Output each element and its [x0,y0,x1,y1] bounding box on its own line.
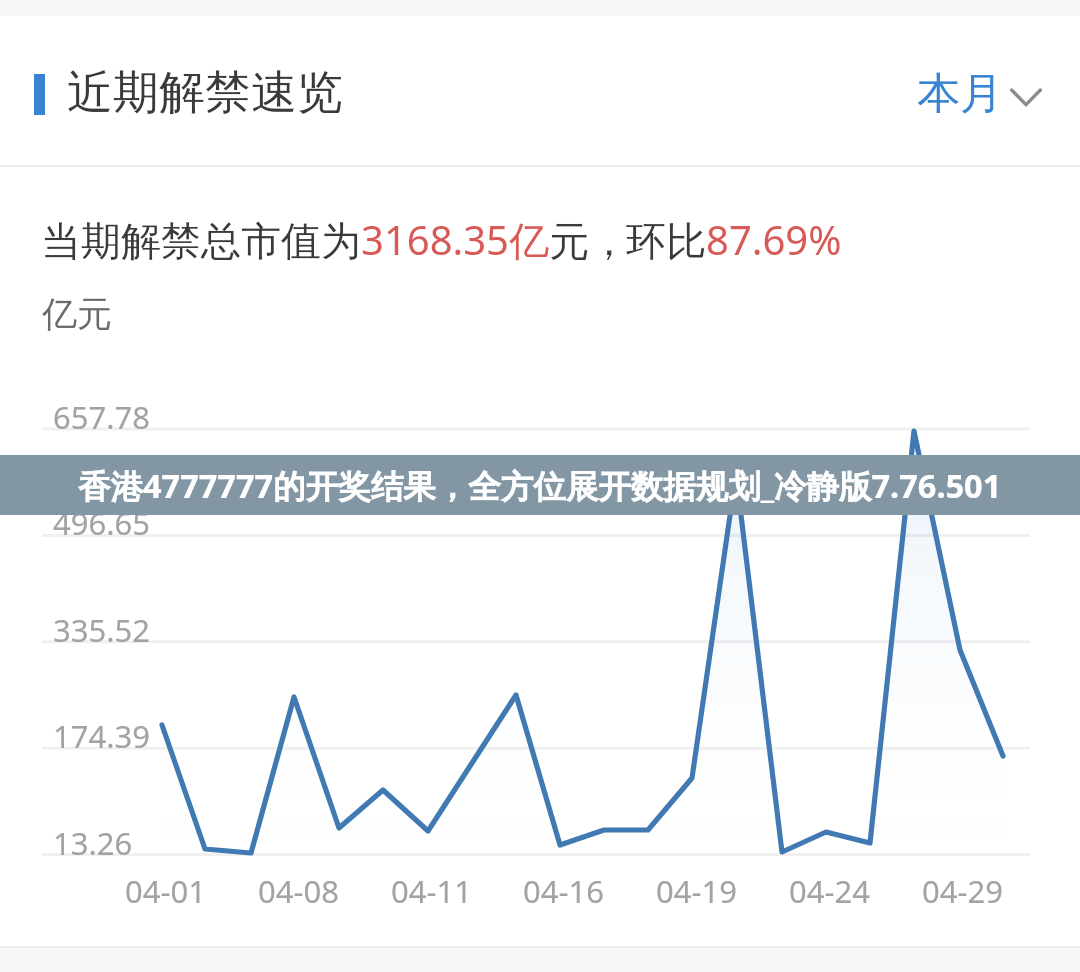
staticText: 04-19 [656,870,737,912]
staticText: 496.65 [53,502,150,544]
other: Change period [1010,81,1042,113]
button[interactable]: 本月 [903,53,1061,135]
staticText: 04-24 [789,870,870,912]
staticText: 亿元 [42,292,112,336]
staticText: 174.39 [53,715,150,757]
staticText: 335.52 [53,609,150,651]
staticText: 04-11 [391,870,472,912]
staticText: 本月 [917,67,1003,121]
staticText: 04-16 [523,870,604,912]
button[interactable]: 近期解禁速览 [34,54,343,112]
staticText: 04-08 [258,870,339,912]
staticText: 近期解禁速览 [67,64,343,122]
staticText: 04-29 [922,870,1003,912]
staticText: 13.26 [53,822,133,864]
staticText: 香港4777777的开奖结果，全方位展开数据规划_冷静版7.76.501 [78,463,1002,507]
staticText: 当期解禁总市值为3168.35亿元，环比87.69% [41,212,842,267]
staticText: 657.78 [53,396,150,438]
staticText: 04-01 [125,870,206,912]
